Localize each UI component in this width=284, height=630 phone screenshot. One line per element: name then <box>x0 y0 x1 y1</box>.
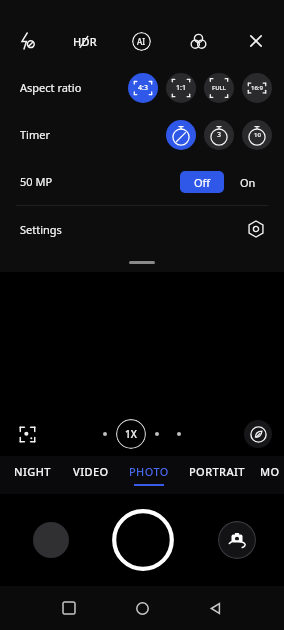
button[interactable]: Filters <box>170 18 227 64</box>
button[interactable]: MO <box>256 456 284 494</box>
staticText: FULL <box>212 84 227 92</box>
button[interactable]: Flash off <box>0 18 56 64</box>
button[interactable]: Aspect ratio 1 by 1 <box>166 73 196 103</box>
button[interactable]: Timer 3 seconds <box>204 120 234 150</box>
button[interactable]: AI scene detection <box>113 18 170 64</box>
staticText: Timer <box>20 127 50 142</box>
staticText: 50 MP <box>20 174 53 189</box>
button[interactable]: On <box>224 171 272 193</box>
button[interactable]: 1X <box>116 419 146 449</box>
button[interactable]: Back <box>198 591 232 625</box>
button[interactable] <box>94 423 116 445</box>
button[interactable]: Recents <box>52 591 86 625</box>
staticText: MO <box>260 464 280 479</box>
button[interactable]: Scan <box>14 421 40 447</box>
button[interactable]: Switch camera <box>218 521 256 559</box>
staticText: 1:1 <box>176 83 186 93</box>
staticText: 16:9 <box>251 84 263 92</box>
staticText: Settings <box>20 222 62 237</box>
button[interactable] <box>146 423 168 445</box>
button[interactable]: PHOTO <box>120 456 178 494</box>
button[interactable]: VIDEO <box>62 456 120 494</box>
staticText: Aspect ratio <box>20 80 82 95</box>
button[interactable]: Timer off <box>166 120 196 150</box>
button[interactable]: Settings <box>0 206 284 252</box>
button[interactable]: Take photo <box>112 509 174 571</box>
button[interactable]: PORTRAIT <box>178 456 256 494</box>
button[interactable] <box>0 252 284 272</box>
button[interactable] <box>168 423 190 445</box>
staticText: PORTRAIT <box>189 464 245 479</box>
staticText: On <box>240 175 256 190</box>
button[interactable]: Timer 10 seconds <box>242 120 272 150</box>
button[interactable]: Home <box>125 591 159 625</box>
button[interactable]: NIGHT <box>2 456 62 494</box>
staticText: 4:3 <box>138 83 148 93</box>
staticText: PHOTO <box>129 464 169 479</box>
staticText: 3 <box>217 130 222 140</box>
button[interactable]: Off <box>180 171 224 193</box>
staticText: Off <box>194 175 211 190</box>
staticText: 1X <box>125 427 137 441</box>
button[interactable]: Aspect ratio 4 by 3 <box>128 73 158 103</box>
staticText: NIGHT <box>14 464 51 479</box>
staticText: 10 <box>254 131 261 139</box>
button[interactable]: Scene effects <box>244 420 272 448</box>
button[interactable]: Aspect ratio 16 by 9 <box>242 73 272 103</box>
staticText: AI <box>137 36 146 47</box>
button[interactable]: HDR off <box>56 18 113 64</box>
button[interactable]: Aspect ratio full <box>204 73 234 103</box>
other: Settings <box>246 219 266 239</box>
staticText: HDR <box>73 34 98 49</box>
button[interactable]: Gallery <box>33 522 69 558</box>
button[interactable]: Close <box>227 18 284 64</box>
staticText: VIDEO <box>73 464 109 479</box>
